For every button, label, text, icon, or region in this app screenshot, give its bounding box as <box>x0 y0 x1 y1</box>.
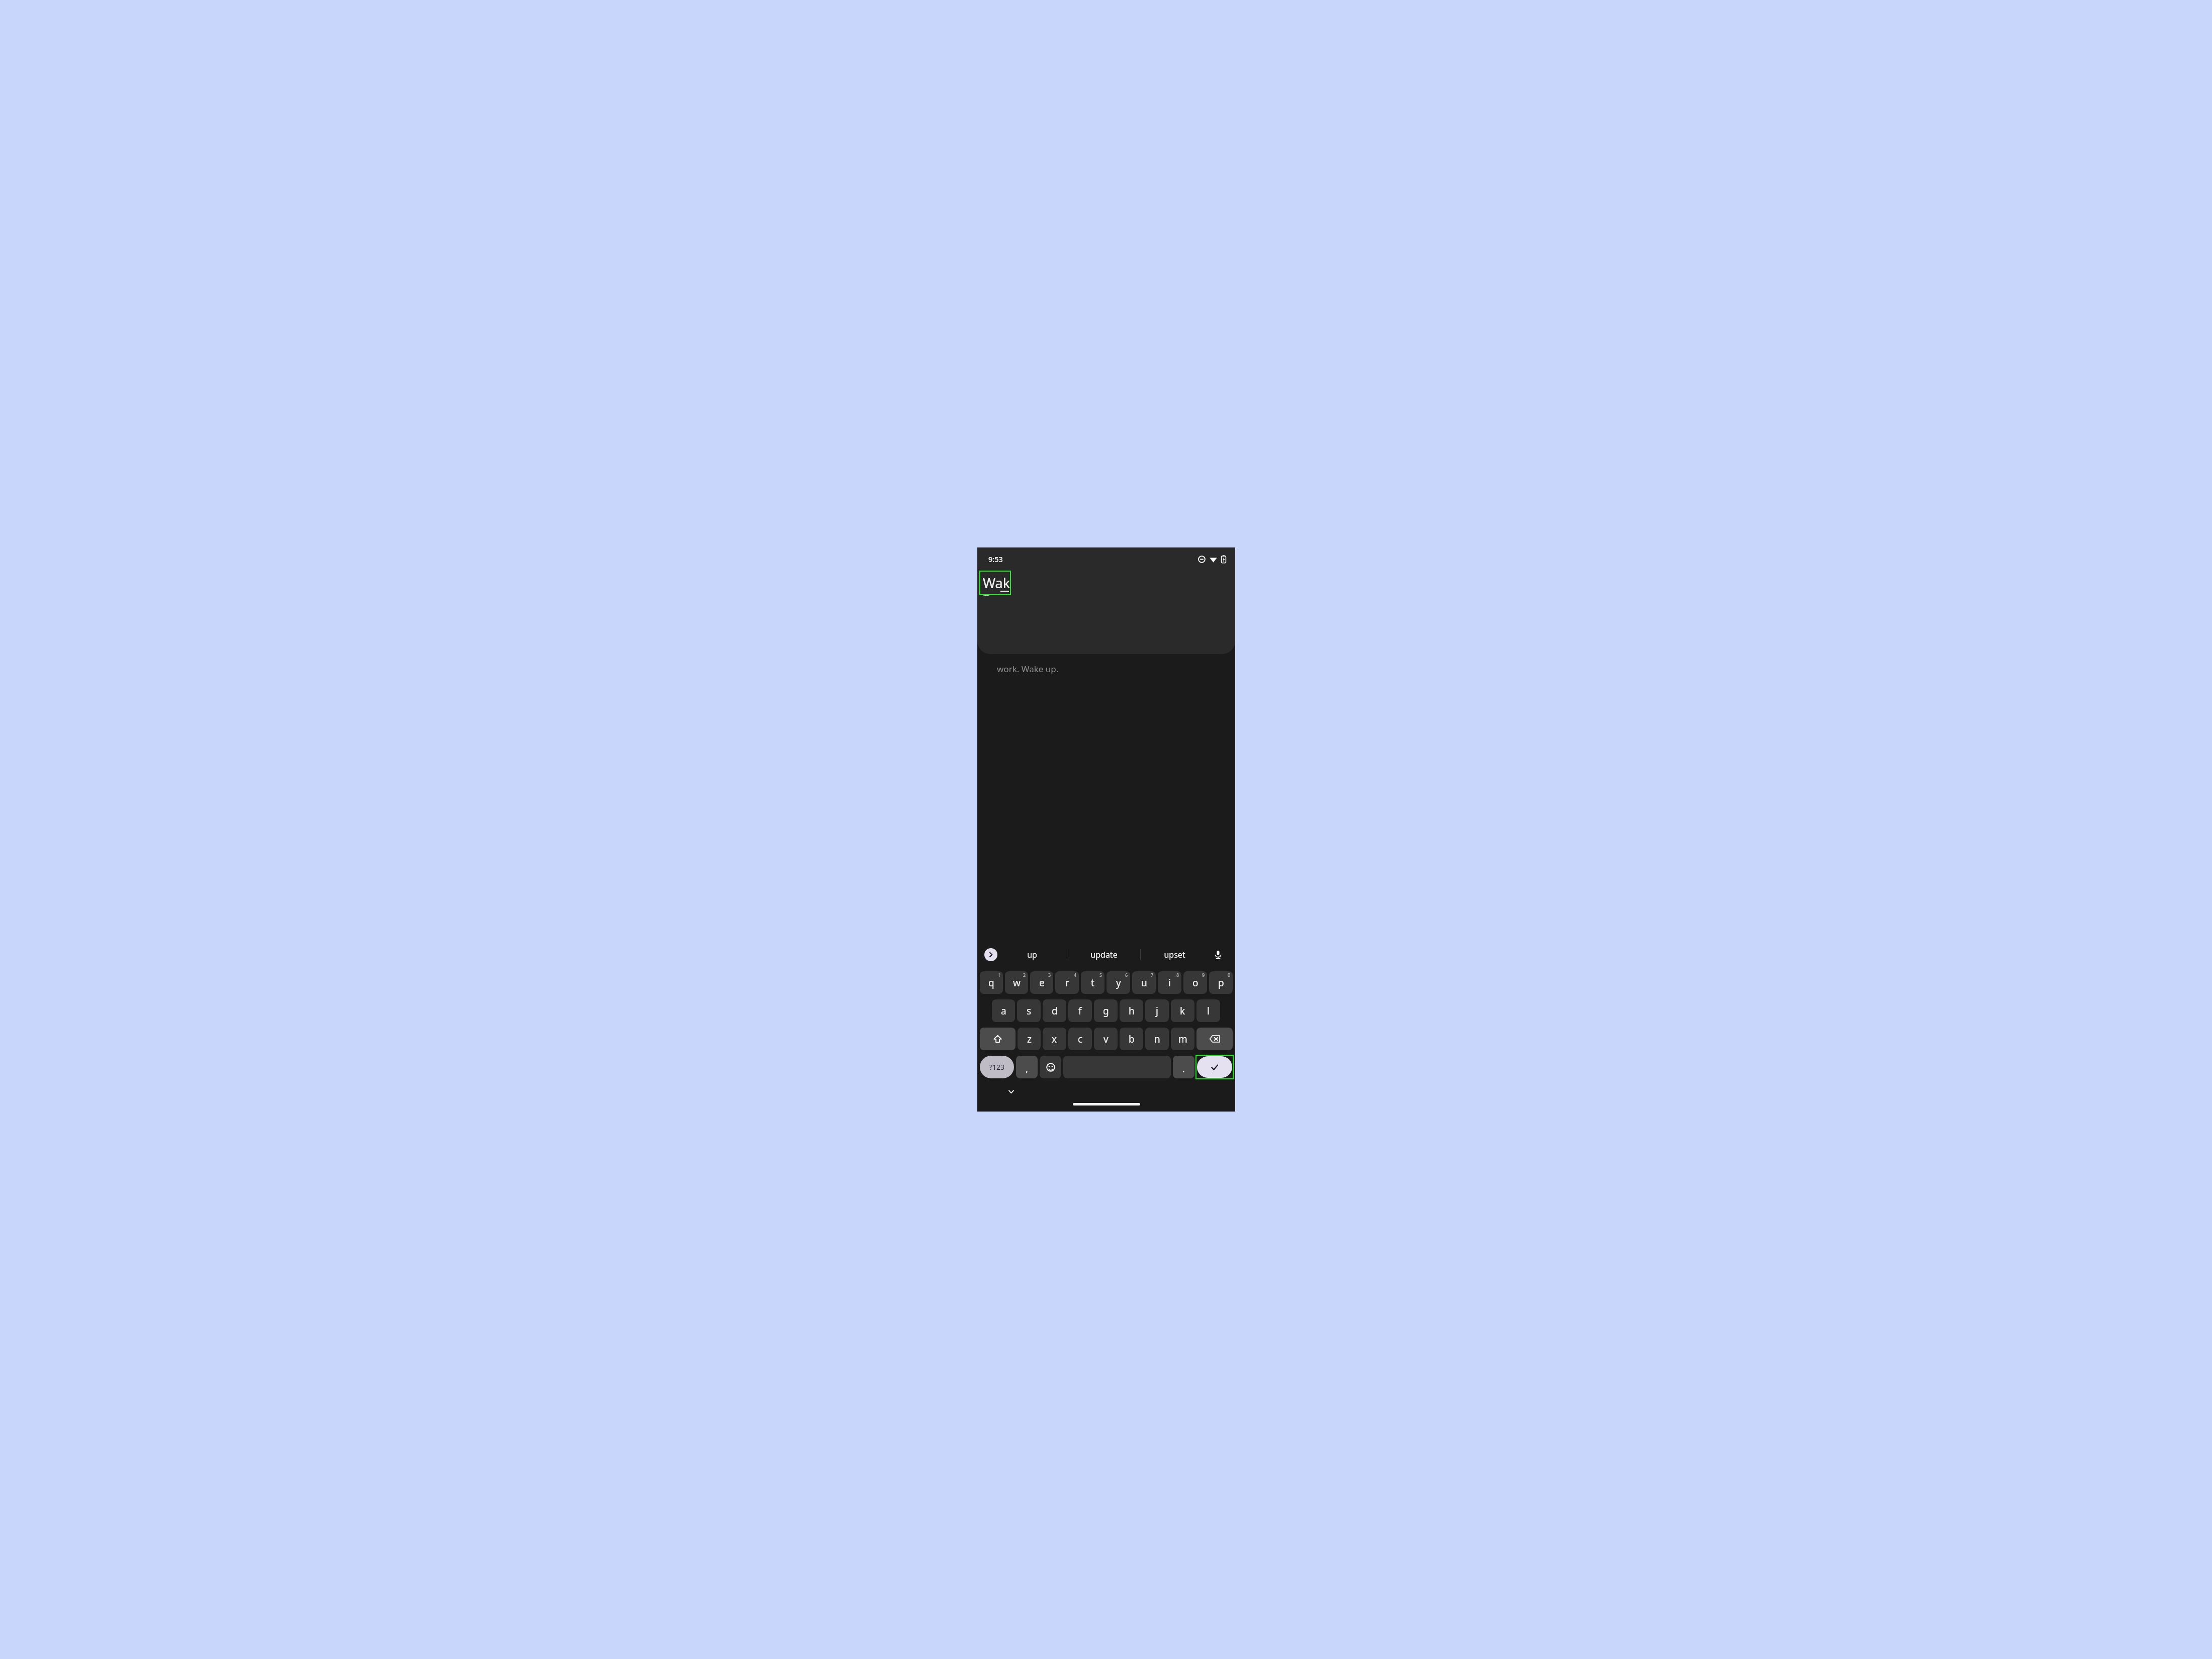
staticText: , <box>1026 1063 1028 1075</box>
button[interactable]: Voice input <box>1208 939 1228 970</box>
button[interactable]: w <box>1005 971 1028 994</box>
button[interactable]: Hide keyboard <box>1005 1085 1017 1097</box>
staticText: . <box>1182 1063 1185 1075</box>
staticText: ?123 <box>989 1062 1005 1072</box>
staticText: b <box>1129 1033 1135 1046</box>
button[interactable]: Enter <box>1197 1056 1232 1078</box>
staticText: v <box>1103 1033 1109 1046</box>
button[interactable]: t <box>1081 971 1104 994</box>
button[interactable]: z <box>1018 1028 1041 1050</box>
staticText: 9 <box>1202 972 1205 978</box>
button[interactable]: s <box>1017 999 1041 1022</box>
button[interactable]: e <box>1030 971 1053 994</box>
button[interactable]: up <box>997 939 1067 970</box>
button[interactable]: , <box>1016 1056 1038 1078</box>
staticText: 1 <box>998 972 1001 978</box>
button[interactable]: upset <box>1141 939 1208 970</box>
staticText: s <box>1027 1004 1032 1018</box>
button[interactable]: i <box>1158 971 1181 994</box>
staticText: w <box>1013 976 1021 989</box>
staticText: o <box>1192 976 1199 989</box>
button[interactable]: p <box>1209 971 1233 994</box>
button[interactable]: f <box>1068 999 1092 1022</box>
staticText: z <box>1027 1033 1032 1046</box>
staticText: e <box>1039 976 1045 989</box>
button[interactable]: k <box>1171 999 1194 1022</box>
staticText: Wake up <box>983 574 1011 595</box>
staticText: j <box>1156 1004 1158 1018</box>
button[interactable]: q <box>980 971 1003 994</box>
staticText: d <box>1052 1004 1058 1018</box>
staticText: work. Wake up. <box>997 663 1059 675</box>
staticText: upset <box>1164 949 1185 960</box>
button[interactable]: v <box>1094 1028 1118 1050</box>
button[interactable]: update <box>1067 939 1140 970</box>
staticText: 2 <box>1023 972 1026 978</box>
staticText: 5 <box>1099 972 1102 978</box>
button[interactable]: a <box>992 999 1015 1022</box>
button[interactable]: d <box>1043 999 1066 1022</box>
button[interactable]: j <box>1145 999 1169 1022</box>
staticText: l <box>1207 1004 1210 1018</box>
staticText: 0 <box>1228 972 1231 978</box>
staticText: u <box>1141 976 1147 989</box>
button[interactable]: m <box>1171 1028 1194 1050</box>
button[interactable]: More suggestions <box>984 948 997 961</box>
staticText: f <box>1078 1004 1082 1018</box>
button[interactable]: Wake up <box>979 571 1011 595</box>
staticText: k <box>1180 1004 1185 1018</box>
staticText: m <box>1178 1033 1187 1046</box>
staticText: t <box>1091 976 1094 989</box>
staticText: 8 <box>1176 972 1179 978</box>
staticText: 7 <box>1151 972 1154 978</box>
staticText: p <box>1218 976 1224 989</box>
staticText: q <box>988 976 994 989</box>
button[interactable]: r <box>1055 971 1079 994</box>
button[interactable]: x <box>1043 1028 1066 1050</box>
staticText: x <box>1052 1033 1057 1046</box>
staticText: y <box>1116 976 1121 989</box>
button[interactable]: Backspace <box>1196 1028 1233 1050</box>
staticText: h <box>1129 1004 1135 1018</box>
staticText: c <box>1078 1033 1083 1046</box>
staticText: up <box>1027 949 1037 960</box>
button[interactable]: . <box>1173 1056 1194 1078</box>
staticText: 3 <box>1048 972 1051 978</box>
button[interactable]: y <box>1107 971 1130 994</box>
staticText: 9:53 <box>988 554 1003 564</box>
button[interactable]: Emoji <box>1040 1056 1061 1078</box>
staticText: 4 <box>1074 972 1077 978</box>
button[interactable]: o <box>1183 971 1207 994</box>
staticText: a <box>1001 1004 1006 1018</box>
button[interactable]: u <box>1132 971 1156 994</box>
button[interactable]: g <box>1094 999 1118 1022</box>
button[interactable]: c <box>1068 1028 1092 1050</box>
button[interactable]: n <box>1145 1028 1169 1050</box>
button[interactable]: Shift <box>980 1028 1016 1050</box>
staticText: r <box>1065 976 1069 989</box>
staticText: g <box>1103 1004 1109 1018</box>
staticText: i <box>1168 976 1171 989</box>
button[interactable]: b <box>1120 1028 1143 1050</box>
staticText: n <box>1154 1033 1160 1046</box>
button[interactable]: ?123 <box>980 1056 1014 1078</box>
button[interactable]: h <box>1120 999 1143 1022</box>
staticText: update <box>1090 949 1118 960</box>
staticText: 6 <box>1125 972 1128 978</box>
button[interactable]: l <box>1196 999 1220 1022</box>
